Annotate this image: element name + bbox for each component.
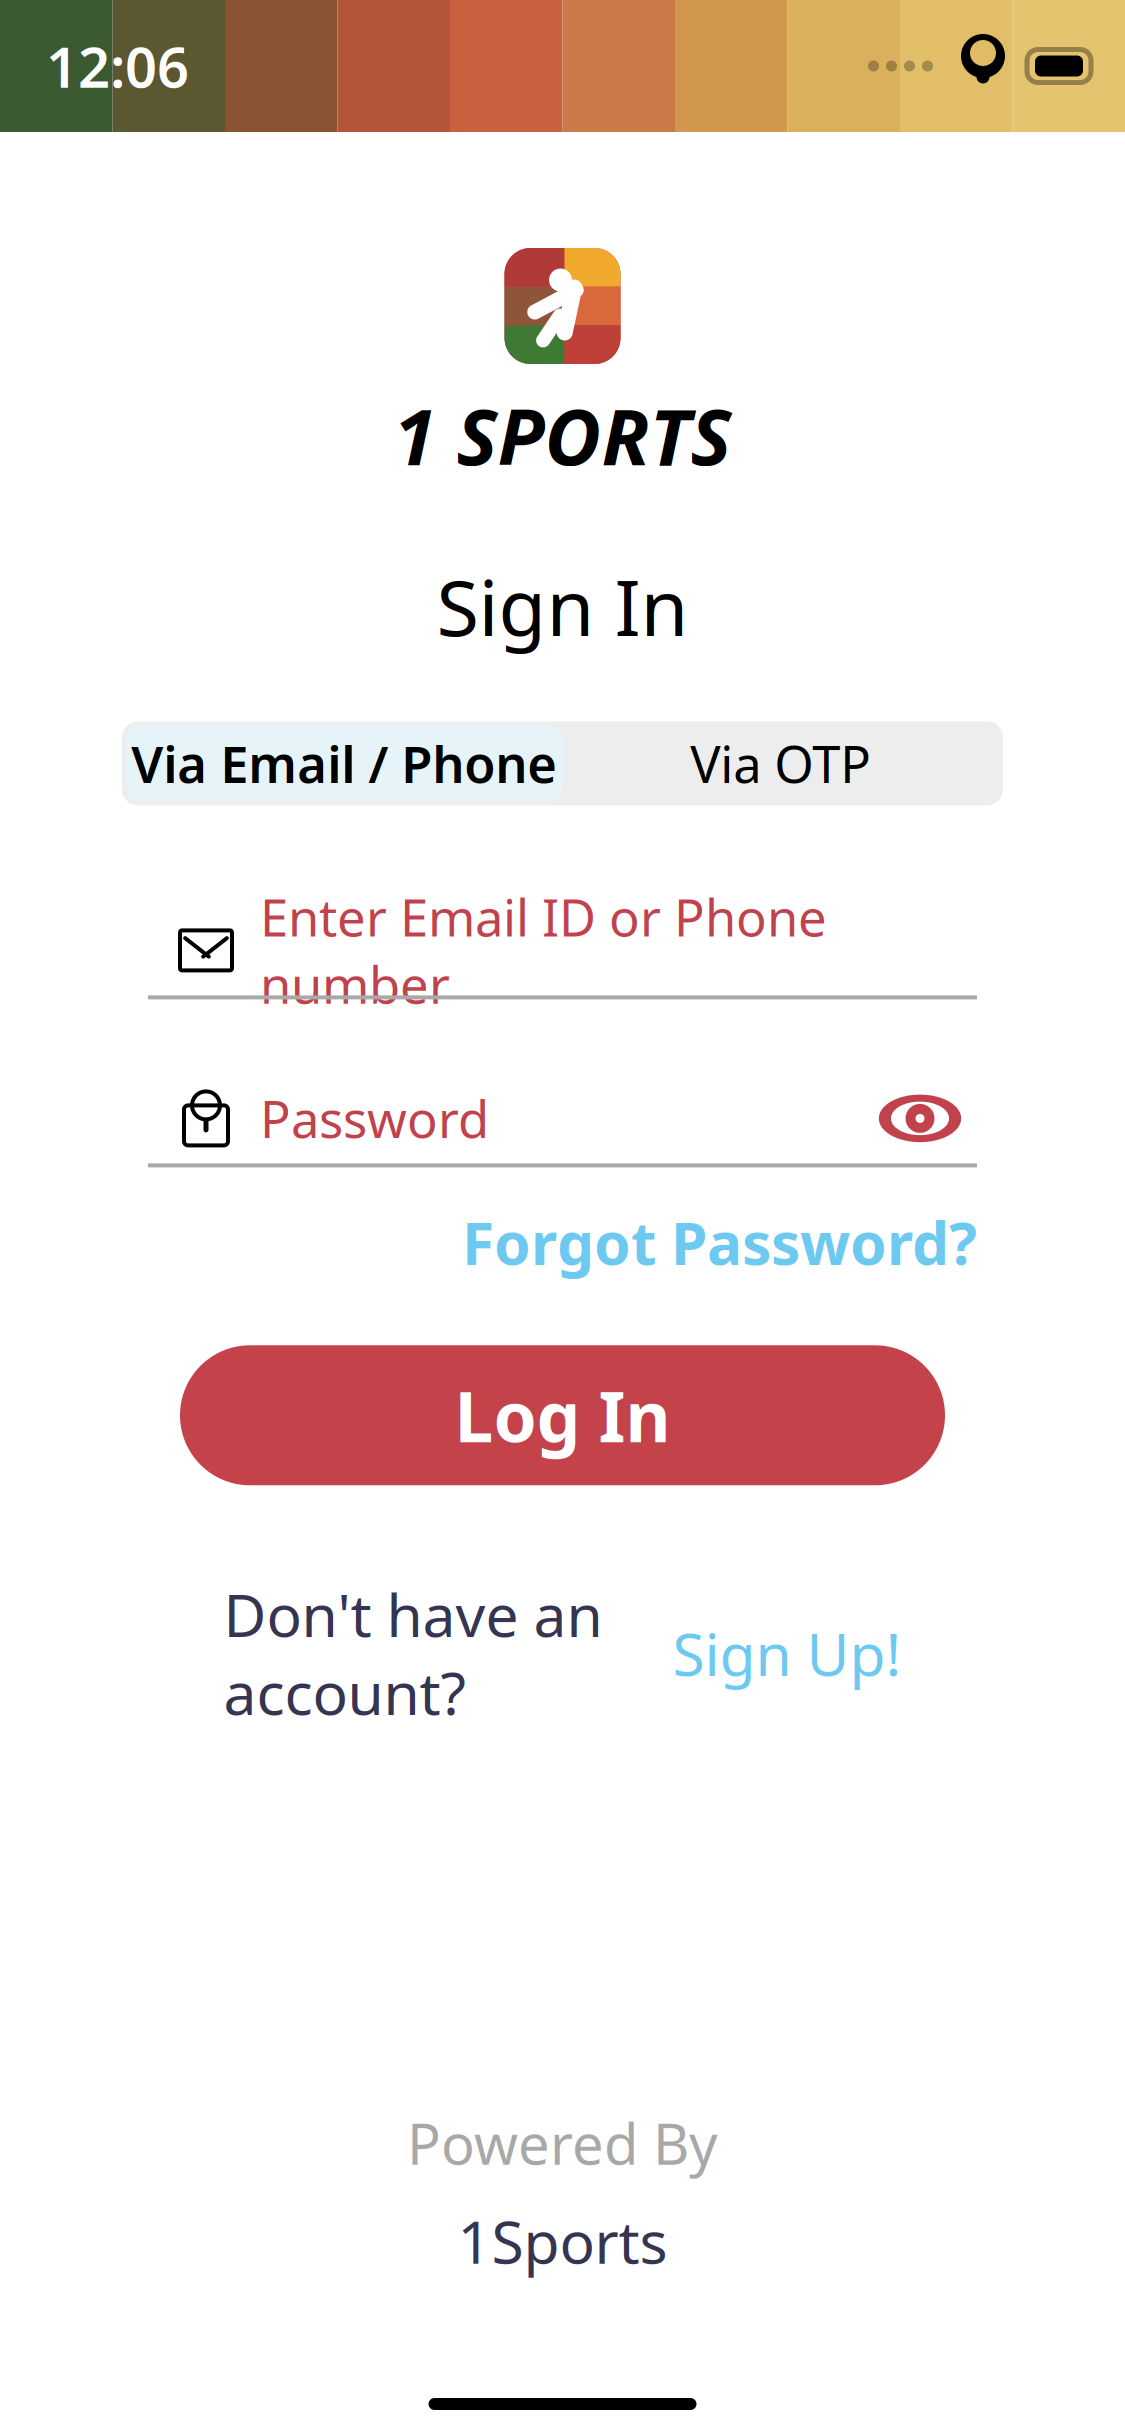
staticText: Don't have an account?: [223, 1575, 602, 1731]
button[interactable]: Log In: [180, 1345, 945, 1485]
staticText: 12:06: [46, 29, 189, 103]
staticText: Sign Up!: [672, 1614, 901, 1692]
staticText: Forgot Password?: [462, 1203, 977, 1281]
button[interactable]: Sign Up!: [672, 1614, 901, 1692]
staticText: Powered By: [407, 2106, 718, 2180]
staticText: Enter Email ID or Phone number: [260, 883, 827, 1018]
staticText: Log In: [454, 1369, 670, 1461]
staticText: 1 SPORTS: [393, 384, 731, 487]
staticText: 1Sports: [457, 2202, 667, 2280]
staticText: Sign In: [436, 555, 688, 657]
button[interactable]: Show password: [883, 1093, 977, 1143]
button[interactable]: Via OTP: [562, 725, 999, 801]
button[interactable]: Forgot Password?: [462, 1203, 977, 1281]
staticText: Via OTP: [690, 730, 871, 797]
button[interactable]: Via Email / Phone: [126, 725, 562, 801]
staticText: Via Email / Phone: [131, 730, 557, 797]
staticText: Password: [260, 1085, 489, 1152]
